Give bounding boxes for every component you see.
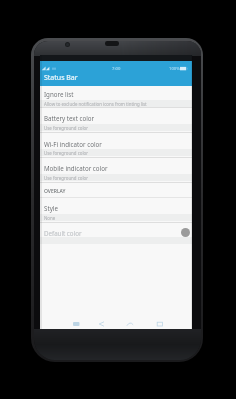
button[interactable]: OVERLAY — [40, 185, 192, 197]
staticText: Default color — [44, 229, 82, 237]
staticText: Wi-Fi indicator color — [44, 140, 102, 148]
staticText: Allow to exclude notification icons from… — [44, 101, 147, 107]
staticText: Battery text color — [44, 114, 95, 122]
button[interactable] — [181, 228, 190, 237]
staticText: OVERLAY — [44, 188, 66, 195]
staticText: Use foreground color — [44, 150, 89, 156]
staticText: Style — [44, 204, 58, 212]
button[interactable]: Wi-Fi indicator color — [40, 137, 192, 151]
staticText: 100% — [169, 66, 180, 72]
button[interactable]: Ignore list — [40, 87, 192, 101]
button[interactable]: Mobile indicator color — [40, 161, 192, 175]
staticText: 7:00 — [112, 66, 121, 72]
staticText: Status Bar — [44, 73, 78, 83]
button[interactable]: Default color — [40, 226, 192, 240]
staticText: Mobile indicator color — [44, 164, 108, 172]
staticText: Use foreground color — [44, 175, 89, 181]
staticText: None — [44, 215, 56, 221]
button[interactable]: Style — [40, 201, 192, 215]
staticText: Use foreground color — [44, 125, 89, 131]
staticText: Ignore list — [44, 90, 74, 98]
button[interactable]: 7:00 — [40, 61, 192, 86]
button[interactable]: Battery text color — [40, 111, 192, 125]
